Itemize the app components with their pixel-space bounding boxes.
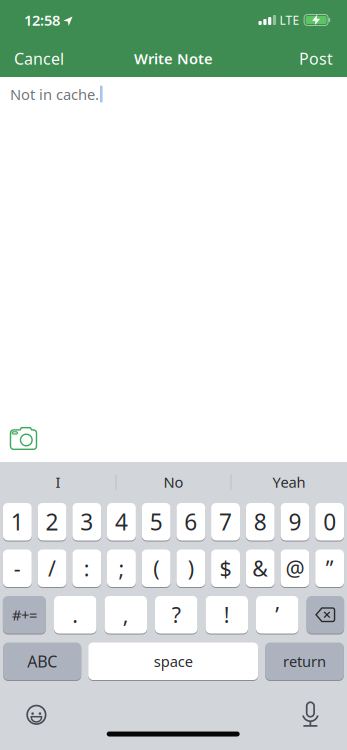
staticText: return bbox=[283, 651, 326, 671]
staticText: LTE bbox=[280, 12, 300, 28]
button[interactable]: ( bbox=[142, 549, 171, 587]
staticText: Write Note bbox=[134, 49, 213, 68]
staticText: 5 bbox=[150, 507, 163, 537]
button[interactable]: ” bbox=[315, 549, 344, 587]
button[interactable]: ABC bbox=[3, 642, 81, 680]
staticText: Not in cache. bbox=[10, 84, 99, 104]
button[interactable]: ; bbox=[107, 549, 136, 587]
staticText: 3 bbox=[80, 507, 93, 537]
button[interactable]: ? bbox=[155, 596, 197, 633]
button[interactable]: 9 bbox=[280, 503, 309, 540]
staticText: ABC bbox=[27, 651, 57, 672]
staticText: Cancel bbox=[14, 48, 64, 69]
staticText: / bbox=[48, 554, 56, 582]
button[interactable]: - bbox=[3, 549, 32, 587]
button[interactable]: / bbox=[38, 549, 66, 587]
button[interactable]: Yeah bbox=[231, 462, 346, 502]
button[interactable]: & bbox=[246, 549, 275, 587]
staticText: & bbox=[252, 554, 268, 582]
button[interactable]: return bbox=[265, 642, 344, 680]
button[interactable]: 1 bbox=[3, 503, 32, 540]
button[interactable] bbox=[307, 596, 344, 633]
button[interactable]: : bbox=[72, 549, 101, 587]
button[interactable]: 2 bbox=[38, 503, 66, 540]
staticText: No bbox=[163, 472, 183, 492]
button[interactable]: 6 bbox=[176, 503, 205, 540]
button[interactable]: #+= bbox=[3, 596, 46, 633]
button[interactable]: I bbox=[0, 462, 115, 502]
staticText: 7 bbox=[219, 507, 232, 537]
button[interactable] bbox=[301, 702, 319, 726]
button[interactable]: 7 bbox=[211, 503, 240, 540]
staticText: , bbox=[123, 601, 129, 629]
staticText: ’ bbox=[275, 601, 279, 629]
staticText: ; bbox=[118, 554, 124, 582]
button[interactable]: 3 bbox=[72, 503, 101, 540]
staticText: @ bbox=[285, 554, 304, 582]
staticText: 6 bbox=[184, 507, 197, 537]
staticText: 2 bbox=[46, 507, 59, 537]
staticText: - bbox=[14, 554, 21, 582]
button[interactable] bbox=[10, 428, 36, 449]
staticText: ( bbox=[153, 554, 159, 582]
staticText: ” bbox=[326, 554, 334, 582]
staticText: Post bbox=[299, 48, 333, 69]
staticText: ) bbox=[188, 554, 194, 582]
staticText: 4 bbox=[115, 507, 128, 537]
staticText: 12:58 bbox=[24, 10, 60, 30]
staticText: 1 bbox=[11, 507, 24, 537]
button[interactable]: 0 bbox=[315, 503, 344, 540]
button[interactable]: . bbox=[54, 596, 96, 633]
staticText: $ bbox=[219, 554, 231, 582]
button[interactable]: Post bbox=[299, 48, 333, 69]
staticText: Yeah bbox=[272, 472, 305, 492]
staticText: 9 bbox=[288, 507, 301, 537]
staticText: . bbox=[72, 601, 78, 629]
button[interactable]: 5 bbox=[142, 503, 171, 540]
button[interactable]: Cancel bbox=[14, 48, 64, 69]
staticText: space bbox=[154, 651, 193, 671]
staticText: I bbox=[55, 472, 60, 492]
button[interactable]: ) bbox=[176, 549, 205, 587]
button[interactable]: ! bbox=[205, 596, 248, 633]
staticText: ? bbox=[172, 601, 181, 629]
button[interactable]: 4 bbox=[107, 503, 136, 540]
staticText: ! bbox=[224, 601, 230, 629]
staticText: 0 bbox=[323, 507, 336, 537]
button[interactable]: $ bbox=[211, 549, 240, 587]
button[interactable]: ’ bbox=[256, 596, 298, 633]
button[interactable]: No bbox=[116, 462, 230, 502]
button[interactable]: , bbox=[104, 596, 147, 633]
button[interactable]: @ bbox=[280, 549, 309, 587]
staticText: : bbox=[84, 554, 90, 582]
button[interactable] bbox=[26, 705, 46, 725]
button[interactable]: 8 bbox=[246, 503, 275, 540]
button[interactable]: space bbox=[88, 642, 258, 680]
staticText: 8 bbox=[254, 507, 267, 537]
staticText: #+= bbox=[12, 605, 37, 624]
